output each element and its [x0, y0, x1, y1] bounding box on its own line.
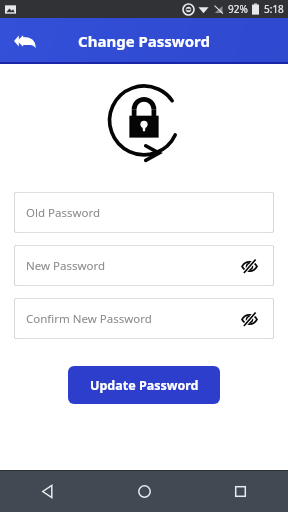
staticText: 5:18	[264, 2, 284, 16]
button[interactable]: Recents	[192, 470, 288, 512]
button[interactable]: Update Password	[68, 366, 220, 404]
staticText: Confirm New Password	[26, 311, 152, 327]
button[interactable]: Show password	[236, 253, 262, 279]
button[interactable]: Back	[6, 21, 46, 61]
staticText: Change Password	[78, 31, 210, 51]
button[interactable]: Home	[96, 470, 192, 512]
staticText: New Password	[26, 258, 106, 274]
button[interactable]: Old Password	[14, 192, 274, 233]
button[interactable]: Show password	[236, 306, 262, 332]
staticText: 92%	[228, 2, 248, 16]
staticText: Old Password	[26, 205, 101, 221]
button[interactable]: Back	[0, 470, 96, 512]
staticText: Update Password	[90, 377, 199, 394]
button[interactable]: New Password	[14, 245, 274, 286]
button[interactable]: Confirm New Password	[14, 298, 274, 339]
